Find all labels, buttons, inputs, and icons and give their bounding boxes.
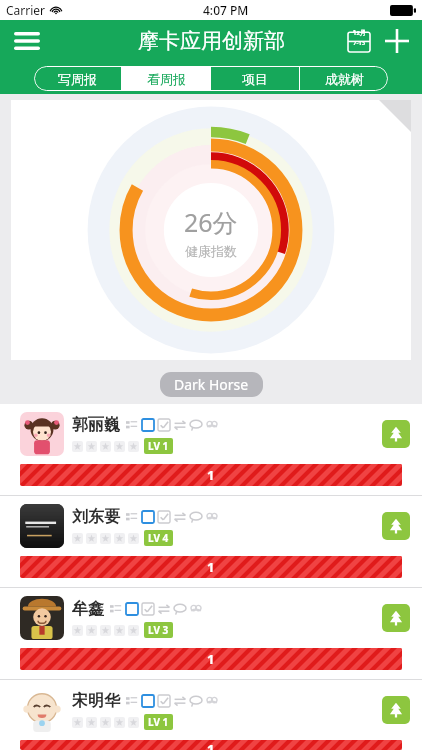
staticText: Dark Horse (174, 375, 249, 394)
button[interactable]: 成就树 (300, 66, 388, 91)
staticText: 宋明华 (72, 691, 120, 711)
button[interactable]: 牟鑫 (0, 588, 422, 679)
button[interactable]: Calendar week 12月 7-13 (344, 26, 374, 56)
staticText: 牟鑫 (72, 599, 104, 619)
button[interactable]: 写周报 (34, 66, 121, 91)
button[interactable]: 郭丽巍 (0, 404, 422, 495)
button[interactable]: 看周报 (122, 66, 210, 91)
staticText: 刘东要 (72, 507, 120, 527)
staticText: LV 4 (148, 531, 169, 545)
staticText: 项目 (242, 71, 268, 87)
button[interactable]: Tree (382, 604, 410, 632)
staticText: 写周报 (58, 71, 97, 87)
button[interactable]: Tree (382, 696, 410, 724)
staticText: LV 3 (148, 623, 169, 637)
staticText: LV 1 (148, 715, 169, 729)
button[interactable]: Menu (10, 24, 44, 58)
staticText: 摩卡应用创新部 (138, 28, 285, 54)
staticText: 郭丽巍 (72, 415, 120, 435)
staticText: 1 (207, 740, 215, 750)
button[interactable]: 项目 (211, 66, 299, 91)
button[interactable]: Tree (382, 512, 410, 540)
staticText: 健康指数 (185, 243, 237, 259)
staticText: 成就树 (325, 71, 364, 87)
button[interactable]: 1 (20, 464, 402, 486)
button[interactable] (11, 100, 411, 360)
staticText: 1 (207, 558, 215, 576)
staticText: 26分 (184, 205, 238, 239)
staticText: 4:07 PM (203, 2, 249, 18)
staticText: 看周报 (147, 71, 186, 87)
staticText: LV 1 (148, 439, 169, 453)
staticText: 7-13 (353, 39, 366, 47)
button[interactable]: 1 (20, 556, 402, 578)
button[interactable]: 宋明华 (0, 680, 422, 750)
staticText: 12月 (353, 29, 366, 37)
button[interactable]: Add (380, 24, 414, 58)
button[interactable]: 1 (20, 740, 402, 750)
staticText: Carrier (6, 2, 46, 18)
staticText: 1 (207, 650, 215, 668)
button[interactable]: Tree (382, 420, 410, 448)
button[interactable]: 1 (20, 648, 402, 670)
button[interactable]: 刘东要 (0, 496, 422, 587)
button[interactable]: Dark Horse (160, 372, 263, 397)
staticText: 1 (207, 466, 215, 484)
